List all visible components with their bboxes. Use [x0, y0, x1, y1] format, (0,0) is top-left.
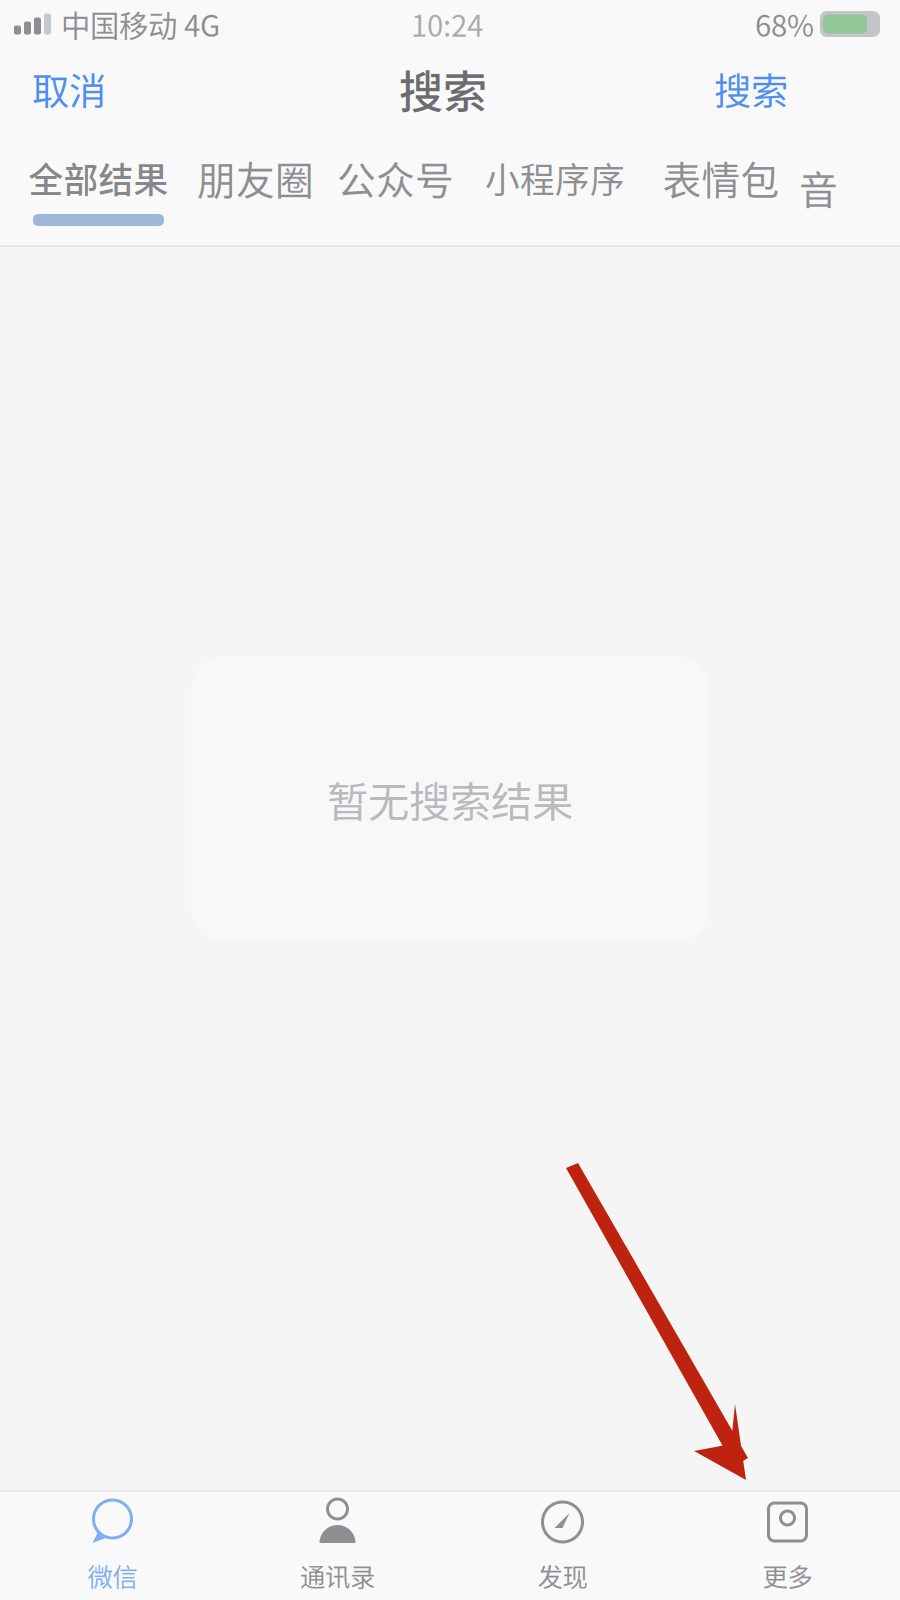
- staticText: 中国移动 4G: [54, 3, 220, 45]
- button[interactable]: 小程序序: [491, 130, 619, 245]
- button[interactable]: 微信: [0, 1492, 225, 1600]
- staticText: 音: [799, 159, 838, 215]
- staticText: 暂无搜索结果: [327, 769, 573, 829]
- staticText: 10:24: [411, 3, 483, 45]
- button[interactable]: 朋友圈: [199, 130, 312, 245]
- staticText: 更多: [762, 1557, 812, 1594]
- staticText: 表情包: [662, 150, 779, 206]
- staticText: 发现: [537, 1557, 587, 1594]
- staticText: 朋友圈: [197, 150, 314, 206]
- button[interactable]: 发现: [450, 1492, 675, 1600]
- button[interactable]: 通讯录: [225, 1492, 450, 1600]
- staticText: 通讯录: [300, 1557, 375, 1594]
- button[interactable]: 全部结果: [33, 130, 164, 245]
- button[interactable]: 取消: [0, 48, 128, 130]
- staticText: 公众号: [337, 150, 454, 206]
- button[interactable]: 表情包: [665, 130, 777, 245]
- staticText: 取消: [32, 62, 106, 116]
- staticText: 搜索: [399, 57, 487, 121]
- staticText: 全部结果: [28, 153, 168, 203]
- staticText: 68%: [755, 3, 814, 45]
- button[interactable]: 搜索: [692, 48, 810, 130]
- staticText: 搜索: [714, 62, 788, 116]
- staticText: 微信: [87, 1557, 137, 1594]
- staticText: 小程序序: [485, 153, 625, 203]
- button[interactable]: 更多: [675, 1492, 900, 1600]
- button[interactable]: 公众号: [339, 130, 452, 245]
